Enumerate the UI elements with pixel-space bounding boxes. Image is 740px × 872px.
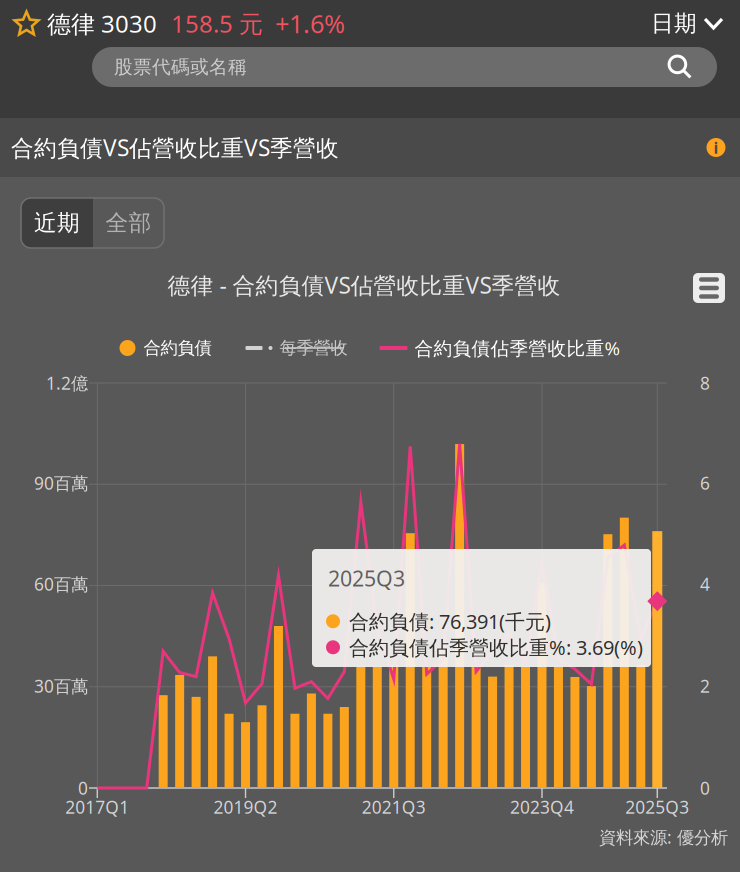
button[interactable]: 合約負債 [119,337,211,359]
staticText: 2021Q3 [362,795,426,818]
staticText: 2025Q3 [328,564,405,592]
staticText: 30百萬 [34,674,88,697]
staticText: 合約負債佔季營收比重% [414,336,620,360]
staticText: 合約負債VS佔營收比重VS季營收 [11,132,339,162]
button[interactable]: 近期 [21,198,93,248]
staticText: 2017Q1 [65,795,129,818]
staticText: 合約負債 [143,337,211,359]
staticText: 近期 [34,209,80,237]
staticText: 合約負債: 76,391(千元) [349,608,551,635]
staticText: 60百萬 [34,572,88,595]
staticText: 158.5 元 [171,8,263,39]
button[interactable]: Add to watchlist [14,11,47,36]
staticText: 資料來源: 優分析 [599,825,728,848]
button[interactable]: Chart menu [693,273,725,303]
button[interactable]: 日期 [651,10,726,37]
staticText: 2019Q2 [213,795,277,818]
staticText: 8 [700,371,710,394]
staticText: 每季營收 [279,337,347,359]
staticText: 2023Q4 [510,795,574,818]
staticText: 日期 [651,10,697,37]
staticText: 德律 3030 [47,8,157,39]
staticText: 0 [700,776,710,799]
button[interactable]: 每季營收 [211,337,347,359]
staticText: 德律 - 合約負債VS佔營收比重VS季營收 [167,270,560,300]
staticText: 6 [700,471,710,494]
staticText: 全部 [105,209,151,237]
staticText: 4 [700,572,710,595]
staticText: 2 [700,674,710,697]
staticText: +1.6% [275,7,345,40]
staticText: 90百萬 [34,471,88,494]
staticText: 2025Q3 [625,795,689,818]
button[interactable]: Search [667,54,717,80]
staticText: 合約負債佔季營收比重%: 3.69(%) [349,634,643,661]
staticText: i [713,137,718,158]
button[interactable]: Info [701,132,731,162]
staticText: 1.2億 [46,371,88,394]
button[interactable]: 全部 [93,198,164,248]
staticText: 股票代碼或名稱 [114,55,247,78]
button[interactable]: 合約負債佔季營收比重% [347,336,620,360]
staticText: 0 [78,776,88,799]
